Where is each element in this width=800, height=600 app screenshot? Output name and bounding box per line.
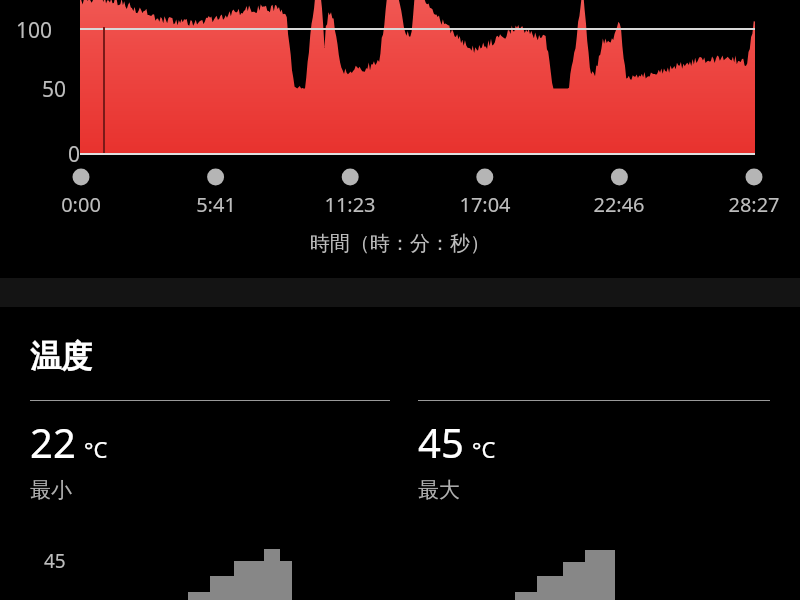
staticText: 17:04 bbox=[430, 191, 540, 218]
button[interactable]: 45 bbox=[400, 400, 800, 503]
staticText: 最大 bbox=[418, 477, 460, 503]
staticText: 11:23 bbox=[295, 191, 405, 218]
staticText: 22 bbox=[30, 415, 76, 469]
staticText: 0:00 bbox=[26, 191, 136, 218]
staticText: 5:41 bbox=[161, 191, 271, 218]
staticText: 22:46 bbox=[564, 191, 674, 218]
staticText: 時間（時：分：秒） bbox=[0, 231, 800, 256]
button[interactable]: 22 bbox=[0, 400, 400, 503]
staticText: 温度 bbox=[30, 337, 92, 376]
staticText: 45 bbox=[418, 415, 464, 469]
staticText: 最小 bbox=[30, 477, 72, 503]
button[interactable]: 100 bbox=[0, 0, 800, 278]
staticText: 100 bbox=[0, 16, 52, 45]
staticText: 0 bbox=[10, 140, 80, 169]
staticText: 28:27 bbox=[699, 191, 800, 218]
staticText: °C bbox=[472, 434, 496, 464]
staticText: 50 bbox=[0, 75, 66, 104]
button[interactable]: 45 bbox=[0, 530, 800, 600]
staticText: 45 bbox=[44, 548, 66, 574]
staticText: °C bbox=[84, 434, 108, 464]
